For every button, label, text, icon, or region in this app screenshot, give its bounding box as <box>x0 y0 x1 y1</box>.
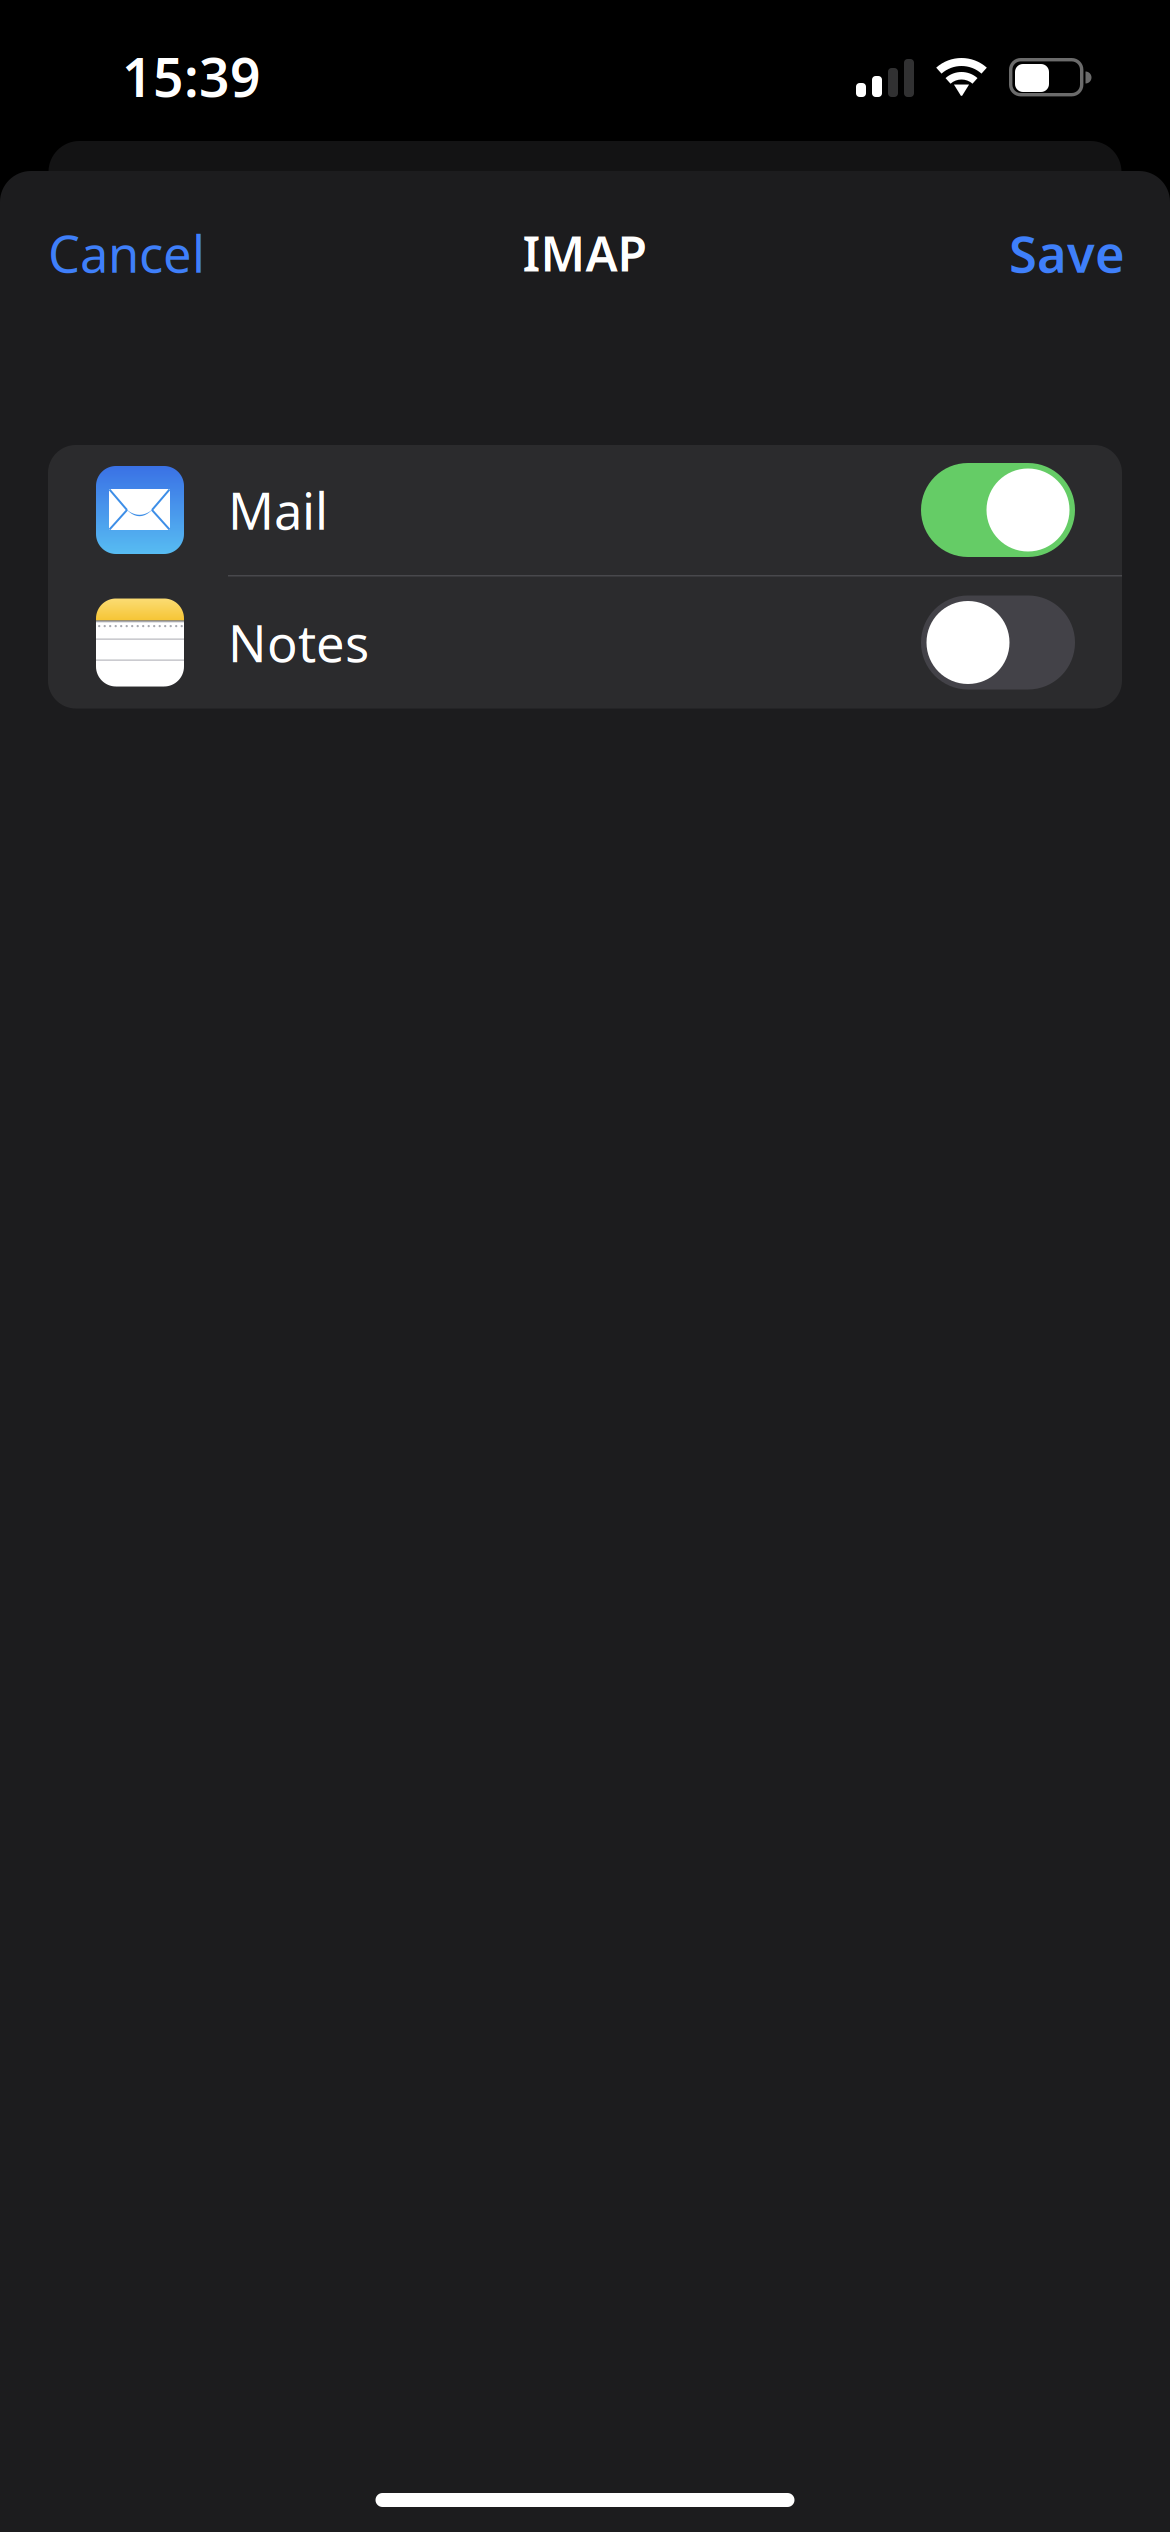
staticText: Cancel <box>48 219 205 287</box>
button[interactable]: Mail <box>921 463 1075 557</box>
button[interactable]: Notes <box>48 576 1122 708</box>
button[interactable]: Cancel <box>24 195 229 311</box>
staticText: 15:39 <box>122 41 261 112</box>
staticText: Mail <box>228 476 328 544</box>
staticText: Notes <box>228 609 369 676</box>
button[interactable]: Notes <box>921 595 1075 689</box>
button[interactable]: Save <box>985 195 1149 311</box>
button[interactable]: Mail <box>48 445 1122 575</box>
staticText: Save <box>1009 219 1125 287</box>
staticText: IMAP <box>522 221 647 285</box>
